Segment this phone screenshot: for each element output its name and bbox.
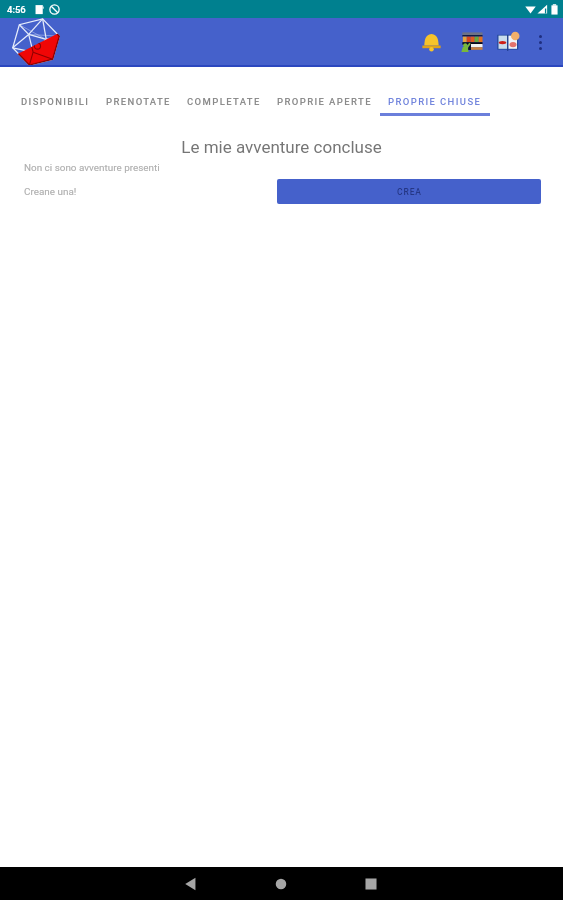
button[interactable]: COMPLETATE [179, 96, 269, 117]
staticText: DISPONIBILI [21, 96, 90, 107]
staticText: PROPRIE CHIUSE [388, 96, 482, 107]
staticText: COMPLETATE [187, 96, 261, 107]
staticText: Le mie avventure concluse [0, 137, 563, 157]
staticText: 4:56 [7, 4, 26, 15]
staticText: PROPRIE APERTE [277, 96, 372, 107]
button[interactable]: Altre opzioni [529, 24, 551, 60]
button[interactable]: CREA [277, 179, 541, 204]
button[interactable]: Manuale [490, 24, 527, 60]
staticText: CREA [397, 187, 422, 197]
button[interactable]: Indietro [173, 867, 207, 900]
staticText: Non ci sono avventure presenti [24, 162, 160, 174]
button[interactable]: PROPRIE APERTE [269, 96, 380, 117]
button[interactable]: Home [264, 867, 298, 900]
button[interactable]: Mercato [452, 24, 489, 60]
button[interactable]: PRENOTATE [98, 96, 179, 117]
staticText: PRENOTATE [106, 96, 171, 107]
staticText: Creane una! [24, 186, 77, 198]
button[interactable]: DISPONIBILI [13, 96, 98, 117]
button[interactable]: Notifiche [412, 24, 450, 60]
button[interactable]: Recenti [354, 867, 388, 900]
button[interactable]: PROPRIE CHIUSE [380, 96, 490, 117]
